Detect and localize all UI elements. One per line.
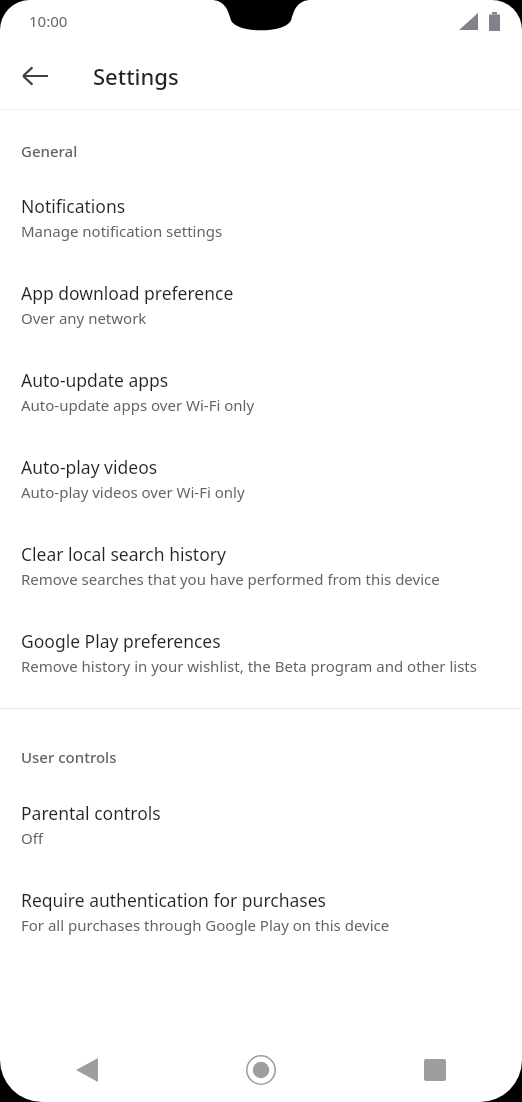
- staticText: Manage notification settings: [21, 221, 223, 241]
- staticText: Remove searches that you have performed …: [21, 569, 440, 589]
- staticText: General: [21, 141, 78, 161]
- button[interactable]: Parental controls: [0, 801, 522, 848]
- button[interactable]: Auto-update apps: [0, 368, 522, 415]
- staticText: Parental controls: [21, 801, 161, 825]
- button[interactable]: Require authentication for purchases: [0, 888, 522, 935]
- staticText: 10:00: [29, 11, 68, 31]
- button[interactable]: App download preference: [0, 281, 522, 328]
- staticText: App download preference: [21, 281, 234, 305]
- button[interactable]: Google Play preferences: [0, 629, 522, 676]
- button[interactable]: Auto-play videos: [0, 455, 522, 502]
- staticText: User controls: [21, 747, 117, 767]
- button[interactable]: Recent apps: [348, 1037, 522, 1102]
- staticText: Settings: [93, 61, 179, 91]
- staticText: Over any network: [21, 308, 147, 328]
- staticText: For all purchases through Google Play on…: [21, 915, 390, 935]
- staticText: Clear local search history: [21, 542, 226, 566]
- button[interactable]: Home: [174, 1037, 348, 1102]
- staticText: Auto-play videos: [21, 455, 158, 479]
- staticText: Auto-play videos over Wi-Fi only: [21, 482, 245, 502]
- staticText: Require authentication for purchases: [21, 888, 326, 912]
- staticText: Google Play preferences: [21, 629, 221, 653]
- staticText: Auto-update apps: [21, 368, 169, 392]
- staticText: Notifications: [21, 194, 126, 218]
- button[interactable]: Notifications: [0, 194, 522, 241]
- button[interactable]: Clear local search history: [0, 542, 522, 589]
- staticText: Auto-update apps over Wi-Fi only: [21, 395, 255, 415]
- button[interactable]: Back: [0, 1037, 174, 1102]
- staticText: Off: [21, 828, 44, 848]
- button[interactable]: Navigate up: [10, 51, 60, 101]
- staticText: Remove history in your wishlist, the Bet…: [21, 656, 477, 676]
